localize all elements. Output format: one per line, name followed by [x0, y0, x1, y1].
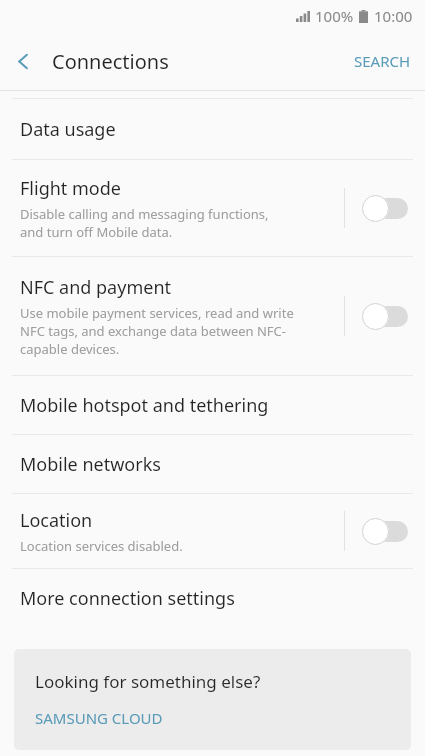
staticText: Use mobile payment services, read and wr… [20, 304, 294, 358]
staticText: 100% [315, 6, 354, 26]
staticText: Location services disabled. [20, 537, 183, 555]
staticText: 10:00 [374, 6, 413, 26]
button[interactable]: Location [0, 494, 425, 568]
staticText: Data usage [20, 117, 116, 142]
staticText: SEARCH [354, 51, 411, 71]
staticText: Flight mode [20, 176, 121, 201]
staticText: Connections [52, 48, 169, 75]
button[interactable]: SAMSUNG CLOUD [35, 708, 163, 728]
staticText: Looking for something else? [35, 670, 261, 693]
button[interactable]: Data usage [0, 99, 425, 159]
button[interactable]: SEARCH [340, 39, 425, 83]
button[interactable]: Flight mode [0, 160, 425, 256]
staticText: Mobile hotspot and tethering [20, 393, 269, 418]
staticText: NFC and payment [20, 275, 172, 300]
staticText: Mobile networks [20, 452, 161, 477]
button[interactable]: Looking for something else? [14, 649, 411, 750]
button[interactable]: Mobile networks [0, 435, 425, 493]
button[interactable]: Back [0, 38, 46, 84]
button[interactable]: Flight mode toggle [345, 185, 425, 232]
button[interactable]: More connection settings [0, 569, 425, 627]
button[interactable]: Location toggle [345, 508, 425, 555]
button[interactable]: NFC and payment [0, 257, 425, 375]
staticText: Disable calling and messaging functions,… [20, 205, 269, 241]
button[interactable]: NFC and payment toggle [345, 293, 425, 340]
staticText: More connection settings [20, 586, 235, 611]
staticText: Location [20, 508, 93, 533]
button[interactable]: Mobile hotspot and tethering [0, 376, 425, 434]
